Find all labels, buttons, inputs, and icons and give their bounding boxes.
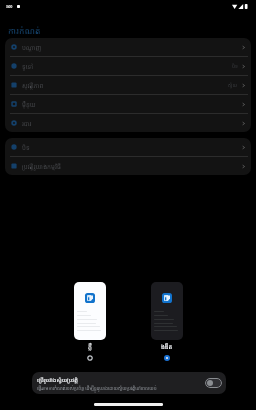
staticText: ងងឹត (161, 343, 173, 351)
button[interactable]: ងងឹត (151, 282, 183, 361)
staticText: 3:00 (6, 5, 13, 9)
staticText: ប្រវត្តិរូបរាងកម្មវិធី (22, 162, 61, 170)
staticText: បណ្តាញ (22, 43, 42, 51)
other: Select (87, 355, 93, 361)
staticText: បិទ (232, 63, 238, 70)
button[interactable]: ប្រើរូបរាងស្វ័យប្រវត្តិ (32, 372, 226, 394)
button[interactable]: របារ (5, 114, 251, 132)
staticText: ការកំណត់ (8, 25, 41, 36)
other: Selected (164, 355, 170, 361)
button[interactable]: ទូទៅ (5, 57, 251, 75)
button[interactable]: ម៉ឺនុយ (5, 95, 251, 113)
staticText: ប្រើរូបរាងស្វ័យប្រវត្តិ (37, 376, 78, 384)
staticText: ស្វ័យ (228, 82, 238, 89)
staticText: ទូទៅ (22, 62, 34, 70)
button[interactable]: ភ្លឺ (74, 282, 106, 361)
button[interactable]: ប្រវត្តិរូបរាងកម្មវិធី (5, 157, 251, 175)
button[interactable]: សុវត្ថិភាព (5, 76, 251, 94)
staticText: បិទ (22, 143, 30, 151)
button[interactable]: បណ្តាញ (5, 38, 251, 56)
staticText: ធ្វើតាមការកំណត់របស់ប្រព័ន្ធ ដើម្បីប្តូររ… (37, 385, 157, 391)
staticText: របារ (22, 119, 32, 127)
staticText: ភ្លឺ (88, 343, 92, 351)
staticText: សុវត្ថិភាព (22, 81, 44, 89)
button[interactable]: Toggle auto theme (205, 378, 222, 388)
button[interactable]: បិទ (5, 138, 251, 156)
staticText: ម៉ឺនុយ (22, 100, 36, 108)
